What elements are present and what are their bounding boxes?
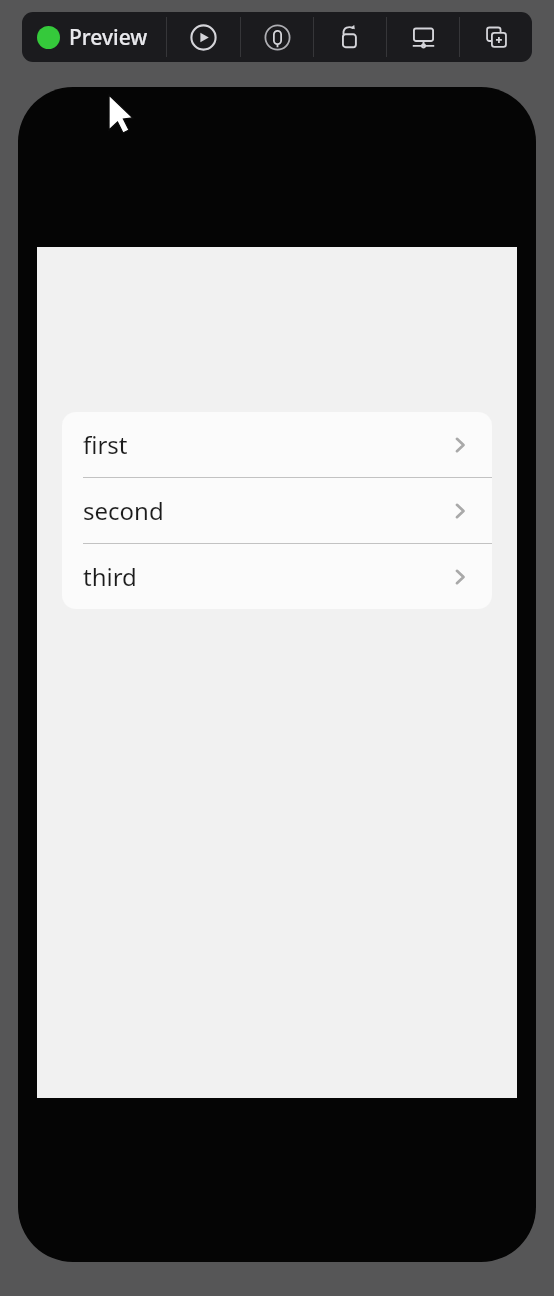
button[interactable]: Deploy to device — [314, 12, 386, 62]
button[interactable]: Interactive preview — [241, 12, 313, 62]
staticText: second — [83, 494, 449, 527]
staticText: first — [83, 428, 449, 461]
button[interactable]: Run preview — [167, 12, 240, 62]
button[interactable]: second — [62, 478, 492, 544]
staticText: Preview — [69, 23, 148, 52]
staticText: third — [83, 560, 449, 593]
button[interactable]: first — [62, 412, 492, 478]
button[interactable]: Open in new window — [387, 12, 459, 62]
button[interactable]: Preview — [22, 12, 166, 62]
button[interactable]: third — [62, 544, 492, 609]
button[interactable]: Add preview — [460, 12, 532, 62]
